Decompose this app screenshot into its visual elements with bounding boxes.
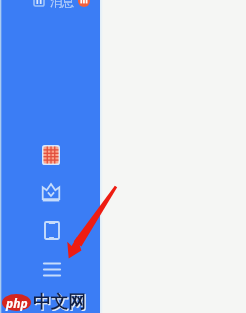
button[interactable]: 消息 xyxy=(50,0,74,9)
button[interactable]: Calendar xyxy=(42,145,60,165)
button[interactable]: VIP xyxy=(42,183,60,201)
button[interactable]: More xyxy=(78,0,90,7)
staticText: php xyxy=(6,295,28,311)
staticText: 消息 xyxy=(50,0,74,9)
staticText: 中文网 xyxy=(33,291,86,313)
staticText: 中文网 xyxy=(34,292,87,313)
button[interactable]: Menu xyxy=(43,262,61,277)
button[interactable]: Calculator xyxy=(34,0,44,6)
button[interactable]: Device xyxy=(44,221,60,240)
